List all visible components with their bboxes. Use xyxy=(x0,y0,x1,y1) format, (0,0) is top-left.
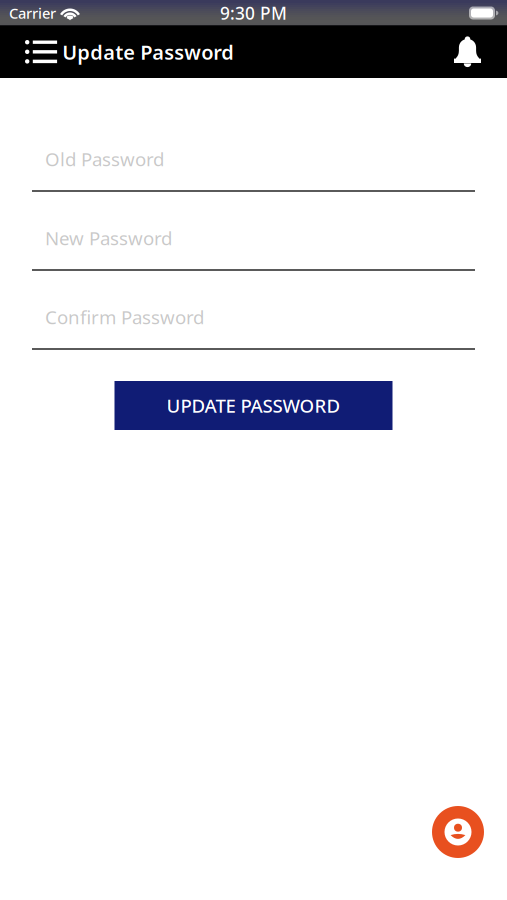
button[interactable]: New Password xyxy=(32,213,475,271)
staticText: UPDATE PASSWORD xyxy=(166,393,340,418)
staticText: Update Password xyxy=(62,39,234,65)
staticText: Carrier xyxy=(9,3,56,23)
button[interactable]: Old Password xyxy=(32,134,475,192)
button[interactable]: UPDATE PASSWORD xyxy=(114,381,392,430)
button[interactable]: Notifications xyxy=(434,26,507,78)
button[interactable]: Profile xyxy=(432,806,484,858)
staticText: 9:30 PM xyxy=(220,1,287,24)
button[interactable]: Confirm Password xyxy=(32,292,475,350)
button[interactable]: Update Password xyxy=(0,26,248,78)
staticText: Confirm Password xyxy=(45,305,204,329)
staticText: New Password xyxy=(45,226,172,250)
staticText: Old Password xyxy=(45,147,164,171)
